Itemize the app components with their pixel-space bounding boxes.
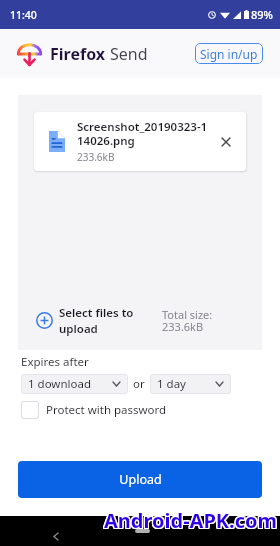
button[interactable]: Upload [18,461,262,498]
staticText: Android-APK.com [103,506,277,533]
staticText: 11:40 [10,8,37,22]
button[interactable]: Home [135,529,150,533]
staticText: Android-APK.com [104,508,278,535]
staticText: Sign in/up [200,46,258,62]
button[interactable]: 1 download [21,374,128,394]
staticText: or [133,376,145,392]
staticText: Send [110,43,148,65]
staticText: Protect with password [46,402,167,418]
button[interactable]: Sign in/up [195,43,263,64]
staticText: Screenshot_20190323-114026.png [77,119,212,149]
button[interactable]: Screenshot_20190323-114026.png [34,112,246,171]
staticText: Android-APK.com [104,507,278,534]
staticText: Android-APK.com [105,507,279,534]
staticText: Android-APK.com [104,506,278,533]
staticText: 233.6kB [77,150,115,164]
staticText: 89% [251,7,273,22]
button[interactable]: Back [46,522,74,546]
staticText: Upload [119,471,162,488]
button[interactable]: Remove file [216,132,236,152]
button[interactable]: Protect with password [21,401,167,419]
staticText: Expires after [21,354,89,370]
button[interactable]: Select files to upload [18,305,262,336]
staticText: Android-APK.com [105,508,279,535]
staticText: Android-APK.com [103,508,277,535]
staticText: 1 day [157,376,186,392]
staticText: Android-APK.com [103,507,277,534]
staticText: Firefox [50,43,110,65]
staticText: Android-APK.com [105,506,279,533]
button[interactable]: 1 day [150,374,231,394]
staticText: Total size: 233.6kB [162,307,213,334]
staticText: Select files to upload [59,305,134,336]
staticText: 1 download [28,376,91,392]
